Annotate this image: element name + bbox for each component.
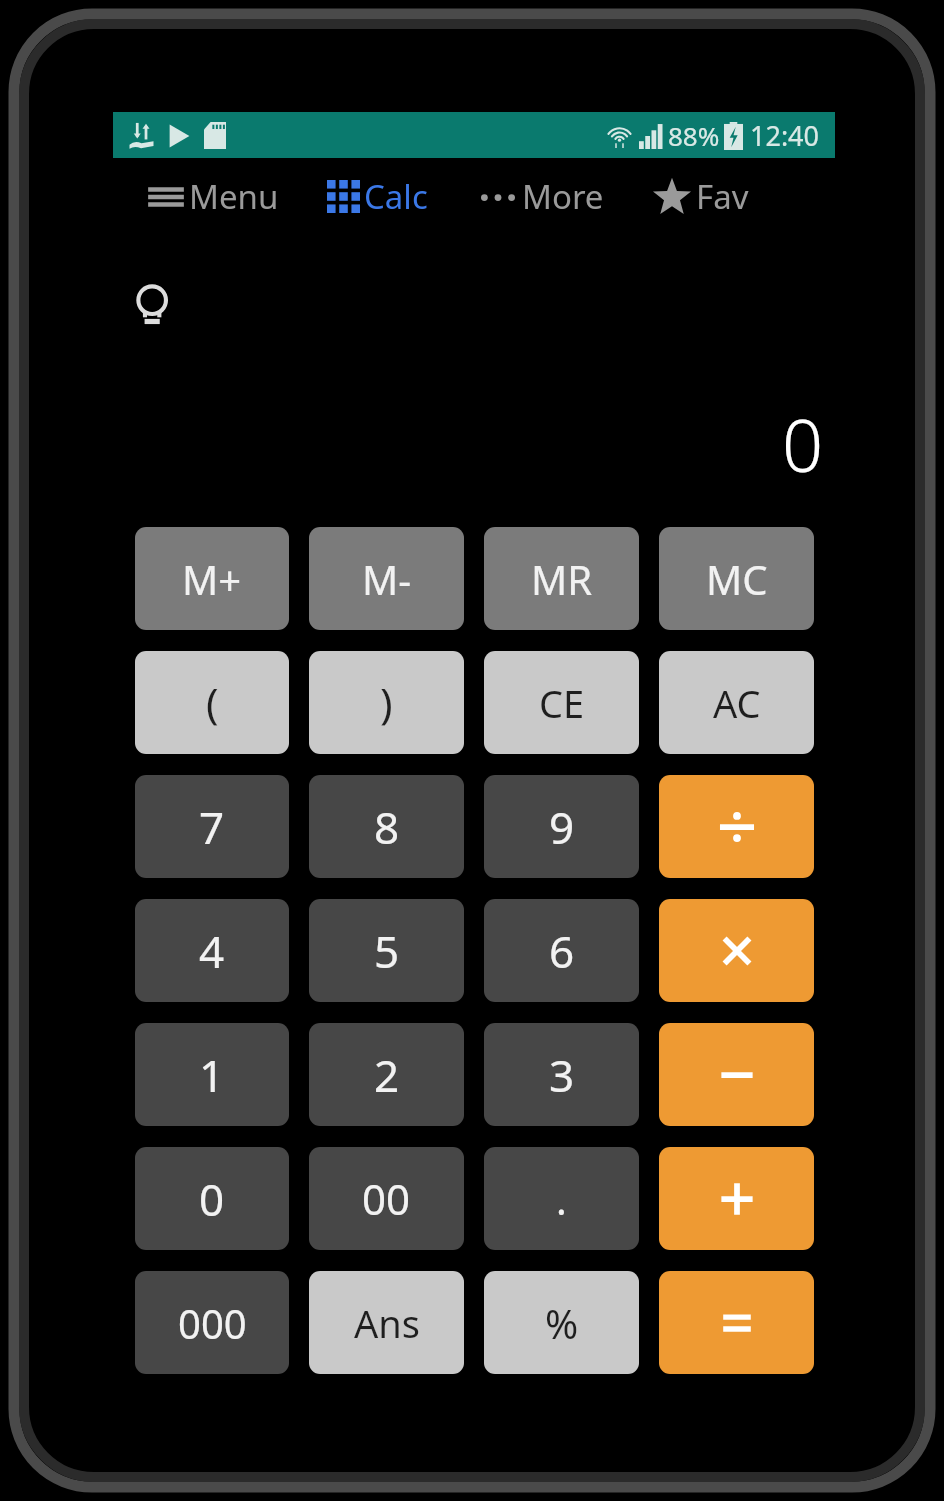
button[interactable]: 0 [135,1147,289,1250]
button[interactable]: 4 [135,899,289,1002]
button[interactable]: Add [659,1147,814,1250]
button[interactable]: 9 [484,775,639,878]
button[interactable]: Equals [659,1271,814,1374]
staticText: MC [706,552,768,606]
button[interactable]: 1 [135,1023,289,1126]
staticText: ( [206,674,219,731]
staticText: 8 [374,797,400,857]
staticText: 3 [549,1045,575,1105]
staticText: 4 [199,921,225,981]
staticText: . [556,1172,567,1226]
button[interactable]: Hint [131,283,177,335]
button[interactable]: AC [659,651,814,754]
staticText: 2 [374,1045,400,1105]
button[interactable]: 3 [484,1023,639,1126]
button[interactable]: 8 [309,775,464,878]
button[interactable]: Divide [659,775,814,878]
staticText: Fav [696,174,749,219]
button[interactable]: MC [659,527,814,630]
button[interactable]: Subtract [659,1023,814,1126]
button[interactable]: ( [135,651,289,754]
staticText: M- [362,552,412,606]
button[interactable]: M+ [135,527,289,630]
staticText: ) [380,674,393,731]
staticText: 0 [199,1169,225,1229]
staticText: 9 [549,797,575,857]
staticText: CE [539,677,585,729]
button[interactable]: Calc [327,168,428,225]
staticText: 6 [549,921,575,981]
button[interactable]: Fav [652,168,749,225]
button[interactable]: 00 [309,1147,464,1250]
staticText: 0 [781,395,823,493]
button[interactable]: . [484,1147,639,1250]
staticText: More [522,174,604,219]
button[interactable]: 7 [135,775,289,878]
staticText: AC [713,677,761,729]
button[interactable]: M- [309,527,464,630]
staticText: 000 [178,1296,247,1350]
staticText: 12:40 [750,117,820,154]
button[interactable]: Multiply [659,899,814,1002]
staticText: Calc [364,174,428,219]
staticText: MR [531,552,593,606]
staticText: 00 [362,1170,411,1227]
staticText: % [545,1296,579,1350]
button[interactable]: % [484,1271,639,1374]
button[interactable]: 000 [135,1271,289,1374]
staticText: 88% [668,118,720,153]
staticText: Menu [189,174,279,219]
button[interactable]: ) [309,651,464,754]
staticText: Ans [354,1297,420,1349]
button[interactable]: MR [484,527,639,630]
staticText: M+ [182,552,242,606]
button[interactable]: Menu [147,168,279,225]
staticText: 1 [199,1045,225,1105]
button[interactable]: 2 [309,1023,464,1126]
button[interactable]: Ans [309,1271,464,1374]
button[interactable]: 6 [484,899,639,1002]
button[interactable]: More [478,168,604,225]
button[interactable]: 5 [309,899,464,1002]
staticText: 5 [374,921,400,981]
staticText: 7 [199,797,225,857]
button[interactable]: CE [484,651,639,754]
